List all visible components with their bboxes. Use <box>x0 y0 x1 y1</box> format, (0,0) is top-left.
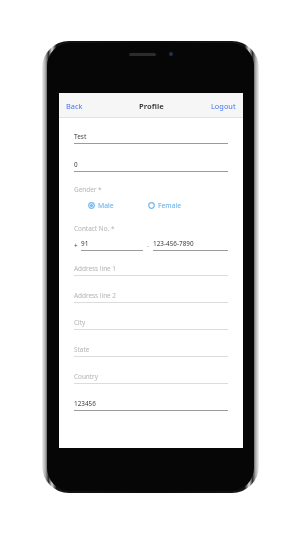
staticText: 0 <box>74 160 78 169</box>
staticText: Address line 1 <box>74 264 117 273</box>
staticText: State <box>74 345 90 354</box>
button[interactable]: Logout <box>204 95 243 117</box>
button[interactable]: 123456 <box>74 399 228 411</box>
button[interactable]: Male <box>86 199 116 212</box>
button[interactable]: Address line 2 <box>74 291 228 303</box>
button[interactable]: Female <box>146 199 184 212</box>
button[interactable]: Back <box>59 95 90 117</box>
staticText: Logout <box>211 101 236 111</box>
staticText: Country <box>74 372 99 381</box>
button[interactable]: Address line 1 <box>74 264 228 276</box>
staticText: Address line 2 <box>74 291 117 300</box>
staticText: Test <box>74 132 87 141</box>
button[interactable]: 0 <box>74 160 228 172</box>
staticText: - <box>147 241 150 250</box>
button[interactable]: 123-456-7890 <box>153 239 228 251</box>
button[interactable]: City <box>74 318 228 330</box>
staticText: Profile <box>139 101 164 111</box>
staticText: Gender * <box>74 185 102 194</box>
staticText: Contact No. * <box>74 224 115 233</box>
staticText: Back <box>66 101 83 111</box>
staticText: Male <box>98 201 114 210</box>
button[interactable]: 91 <box>81 239 143 251</box>
staticText: Female <box>158 201 182 210</box>
staticText: City <box>74 318 86 327</box>
staticText: 91 <box>81 239 89 248</box>
staticText: + <box>74 241 78 250</box>
button[interactable]: Test <box>74 132 228 144</box>
button[interactable]: Country <box>74 372 228 384</box>
button[interactable]: State <box>74 345 228 357</box>
staticText: 123-456-7890 <box>153 239 194 248</box>
staticText: 123456 <box>74 399 96 408</box>
